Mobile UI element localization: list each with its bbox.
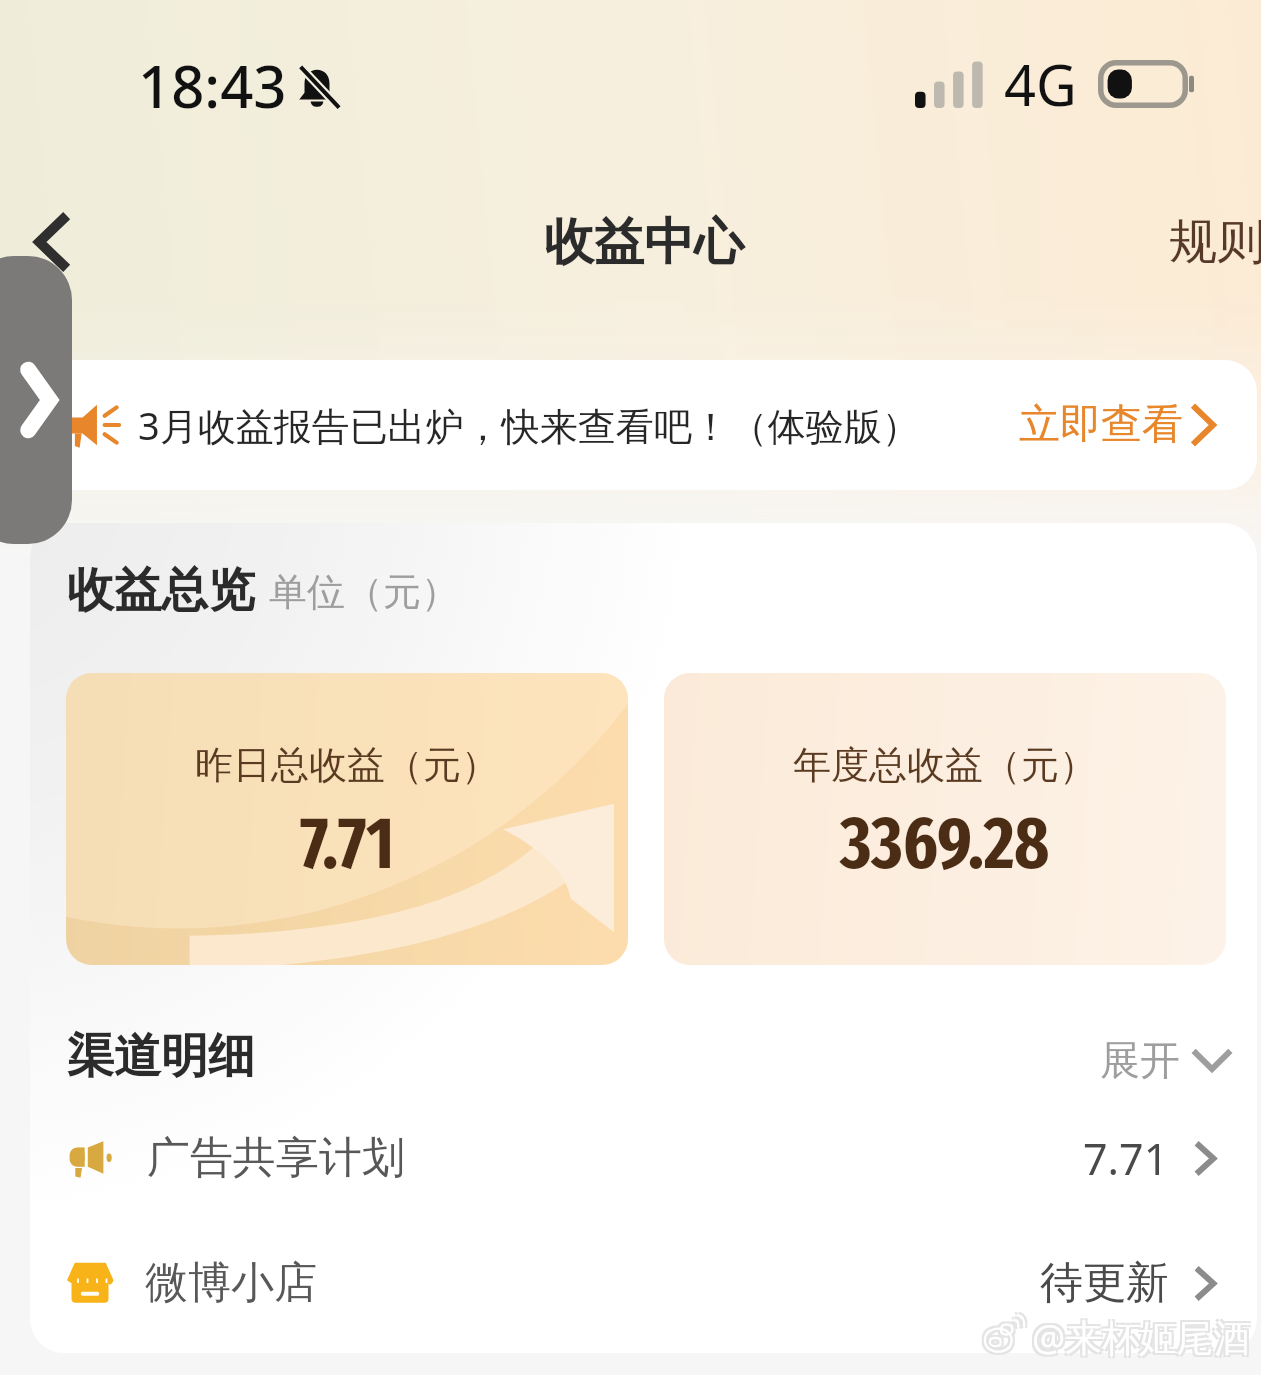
- staticText: 待更新: [1040, 1256, 1169, 1310]
- staticText: 昨日总收益（元）: [195, 741, 499, 789]
- staticText: 3369.28: [840, 801, 1050, 887]
- staticText: 年度总收益（元）: [793, 741, 1097, 789]
- staticText: @来杯姬尾酒: [1034, 1309, 1253, 1360]
- staticText: 7.71: [1083, 1129, 1169, 1188]
- button[interactable]: 广告共享计划: [67, 1103, 1215, 1213]
- button[interactable]: 3月收益报告已出炉，快来查看吧！（体验版）: [30, 360, 1257, 490]
- staticText: 3月收益报告已出炉，快来查看吧！（体验版）: [138, 399, 920, 451]
- staticText: 微博小店: [145, 1256, 317, 1310]
- staticText: 广告共享计划: [147, 1131, 405, 1185]
- staticText: @来杯姬尾酒: [1034, 1313, 1253, 1364]
- staticText: 18:43: [138, 46, 287, 125]
- button[interactable]: 昨日总收益（元）: [66, 673, 628, 965]
- button[interactable]: 展开: [1100, 1035, 1232, 1085]
- staticText: @来杯姬尾酒: [1030, 1309, 1249, 1360]
- staticText: 7.71: [300, 801, 395, 887]
- button[interactable]: 年度总收益（元）: [664, 673, 1226, 965]
- button[interactable]: Back gesture: [0, 256, 72, 544]
- staticText: 收益中心: [544, 211, 744, 274]
- staticText: 单位（元）: [269, 568, 459, 616]
- staticText: 立即查看: [1019, 399, 1183, 451]
- button[interactable]: 微博小店: [67, 1228, 1215, 1338]
- staticText: @来杯姬尾酒: [1030, 1313, 1249, 1364]
- staticText: 渠道明细: [67, 1027, 255, 1086]
- staticText: 收益总览: [67, 561, 255, 620]
- button[interactable]: 规则: [1169, 212, 1261, 272]
- button[interactable]: Back: [8, 194, 98, 290]
- staticText: 展开: [1100, 1035, 1180, 1085]
- staticText: 4G: [1004, 46, 1077, 122]
- staticText: @来杯姬尾酒: [1032, 1311, 1251, 1362]
